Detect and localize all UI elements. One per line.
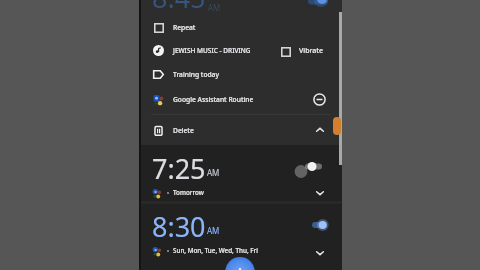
button[interactable]: Expand alarm bbox=[310, 183, 329, 202]
staticText: Vibrate bbox=[299, 46, 324, 56]
button[interactable]: Delete bbox=[139, 119, 342, 142]
button[interactable]: JEWISH MUSIC - DRIVING bbox=[139, 39, 342, 62]
button[interactable]: Vibrate bbox=[280, 43, 324, 59]
staticText: Sun, Mon, Tue, Wed, Thu, Fri bbox=[173, 246, 258, 255]
button[interactable] bbox=[139, 0, 342, 145]
button[interactable]: Toggle alarm bbox=[297, 157, 327, 177]
staticText: AM bbox=[208, 2, 221, 13]
button[interactable]: Remove routine bbox=[311, 91, 327, 107]
button[interactable]: 8:30 bbox=[139, 205, 342, 262]
staticText: AM bbox=[207, 225, 220, 236]
button[interactable]: Add alarm bbox=[225, 257, 255, 270]
staticText: Training today bbox=[173, 70, 219, 79]
staticText: 7:25 bbox=[152, 150, 206, 187]
staticText: Google Assistant Routine bbox=[173, 95, 254, 104]
staticText: JEWISH MUSIC - DRIVING bbox=[173, 46, 251, 55]
staticText: Repeat bbox=[173, 23, 196, 32]
staticText: Delete bbox=[173, 126, 194, 135]
staticText: 8:45 bbox=[152, 0, 206, 16]
button[interactable]: Toggle alarm bbox=[297, 215, 327, 235]
button[interactable]: Repeat bbox=[139, 16, 342, 39]
button[interactable]: Collapse bbox=[313, 123, 327, 137]
button[interactable]: Google Assistant Routine bbox=[139, 88, 342, 111]
button[interactable]: Expand alarm bbox=[310, 243, 329, 262]
button[interactable]: Training today bbox=[139, 63, 342, 86]
staticText: AM bbox=[207, 167, 220, 178]
button[interactable]: 7:25 bbox=[139, 147, 342, 204]
staticText: 8:30 bbox=[152, 208, 206, 245]
staticText: Tomorrow bbox=[173, 188, 204, 197]
